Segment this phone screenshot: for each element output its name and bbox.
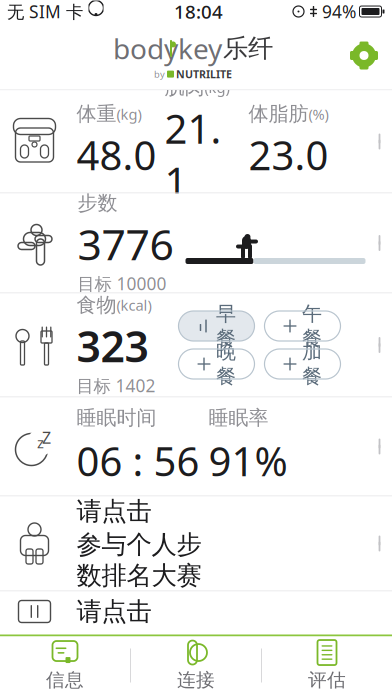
staticText: 体脂肪 xyxy=(248,102,308,126)
staticText: 睡眠率 xyxy=(208,406,268,430)
staticText: 3776 xyxy=(77,215,173,272)
staticText: 食物 xyxy=(76,293,116,317)
button[interactable]: 步数 xyxy=(0,193,392,292)
button[interactable]: 信息 xyxy=(0,637,130,693)
staticText: 信息 xyxy=(46,668,84,691)
staticText: 连接 xyxy=(177,668,215,691)
staticText: 肌肉 xyxy=(164,75,204,100)
button[interactable]: 体重 xyxy=(0,90,392,192)
staticText: 48.0 xyxy=(76,128,156,181)
staticText: 目标 10000 xyxy=(77,272,166,295)
staticText: 21.1 xyxy=(164,102,221,208)
staticText: 步数 xyxy=(77,191,117,215)
staticText: 午餐 xyxy=(302,301,322,350)
staticText: (kg) xyxy=(116,104,141,124)
staticText: 请点击 xyxy=(76,596,151,627)
button[interactable]: 晚餐 xyxy=(178,349,254,379)
staticText: 06 : 56 xyxy=(76,434,199,487)
staticText: 乐纤 xyxy=(223,33,273,64)
button[interactable]: 早餐 xyxy=(178,311,254,341)
staticText: 参与个人步数排名大赛 xyxy=(76,529,201,591)
staticText: NUTRILITE xyxy=(176,67,232,81)
staticText: 体重 xyxy=(76,102,116,126)
staticText: (%) xyxy=(308,104,328,124)
staticText: 睡眠时间 xyxy=(76,406,156,430)
staticText: 评估 xyxy=(308,668,346,691)
staticText: 18:04 xyxy=(174,0,223,24)
button[interactable]: z xyxy=(0,397,392,495)
staticText: (kg) xyxy=(204,78,229,97)
staticText: 23.0 xyxy=(248,128,328,181)
staticText: 无 SIM 卡 xyxy=(7,0,83,23)
button[interactable]: Settings xyxy=(342,33,386,77)
button[interactable]: 加餐 xyxy=(264,349,340,379)
staticText: 323 xyxy=(76,317,148,374)
staticText: 91% xyxy=(208,434,287,487)
staticText: by xyxy=(154,68,165,80)
staticText: (kcal) xyxy=(116,295,151,315)
staticText: 94% xyxy=(322,0,356,23)
button[interactable]: 评估 xyxy=(262,637,392,693)
staticText: Z xyxy=(42,427,51,448)
staticText: 请点击 xyxy=(76,496,151,527)
button[interactable]: 连接 xyxy=(131,637,261,693)
button[interactable]: 午餐 xyxy=(264,311,340,341)
staticText: 加餐 xyxy=(302,339,322,388)
button[interactable]: 请点击 xyxy=(0,496,392,590)
staticText: y xyxy=(164,30,178,67)
button[interactable]: 食物 xyxy=(0,293,392,396)
staticText: 早餐 xyxy=(216,301,236,350)
staticText: 目标 1402 xyxy=(76,374,155,397)
button[interactable]: 请点击 xyxy=(0,591,392,631)
staticText: bod xyxy=(113,30,164,67)
staticText: z xyxy=(37,433,44,452)
staticText: key xyxy=(178,30,222,67)
staticText: 晚餐 xyxy=(216,339,236,388)
